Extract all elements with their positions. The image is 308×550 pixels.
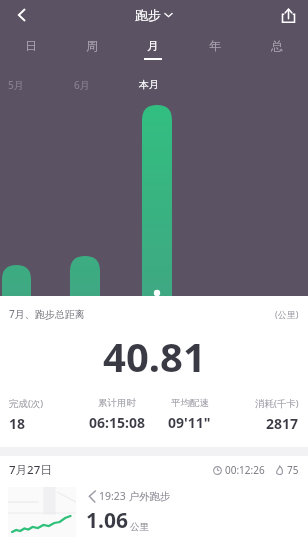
staticText: 7月、跑步总距离 — [9, 307, 85, 321]
staticText: 18 — [9, 414, 26, 433]
button[interactable]: 跑步 — [135, 7, 173, 23]
staticText: 完成(次) — [9, 397, 44, 410]
staticText: 总 — [271, 38, 283, 53]
staticText: 日 — [25, 38, 37, 53]
staticText: 75 — [287, 463, 299, 477]
staticText: 5月 — [8, 78, 24, 92]
staticText: 累计用时 — [98, 397, 136, 409]
button[interactable]: 周 — [61, 33, 122, 65]
staticText: 09'11" — [168, 413, 211, 432]
staticText: 跑步 — [135, 7, 161, 23]
staticText: 年 — [209, 38, 221, 53]
staticText: 本月 — [139, 78, 159, 91]
staticText: 2817 — [266, 414, 299, 433]
staticText: 消耗(千卡) — [255, 397, 299, 410]
staticText: 平均配速 — [171, 397, 209, 409]
button[interactable]: Share — [268, 0, 308, 30]
button[interactable]: 年 — [184, 33, 246, 65]
staticText: 周 — [86, 38, 98, 53]
staticText: 40.81 — [103, 329, 206, 383]
staticText: 00:12:26 — [225, 463, 265, 477]
button[interactable]: 19:23 户外跑步 — [0, 484, 308, 544]
staticText: (公里) — [275, 308, 299, 320]
button[interactable]: 日 — [0, 33, 61, 65]
button[interactable]: 月 — [122, 33, 184, 65]
staticText: 7月27日 — [9, 462, 52, 478]
button[interactable]: Back — [0, 0, 44, 30]
button[interactable]: 总 — [246, 33, 308, 65]
staticText: 06:15:08 — [89, 413, 145, 432]
staticText: 19:23 户外跑步 — [99, 489, 171, 503]
staticText: 6月 — [74, 78, 90, 92]
staticText: 1.06 — [86, 506, 128, 535]
staticText: 月 — [147, 38, 159, 53]
staticText: 公里 — [130, 521, 149, 533]
